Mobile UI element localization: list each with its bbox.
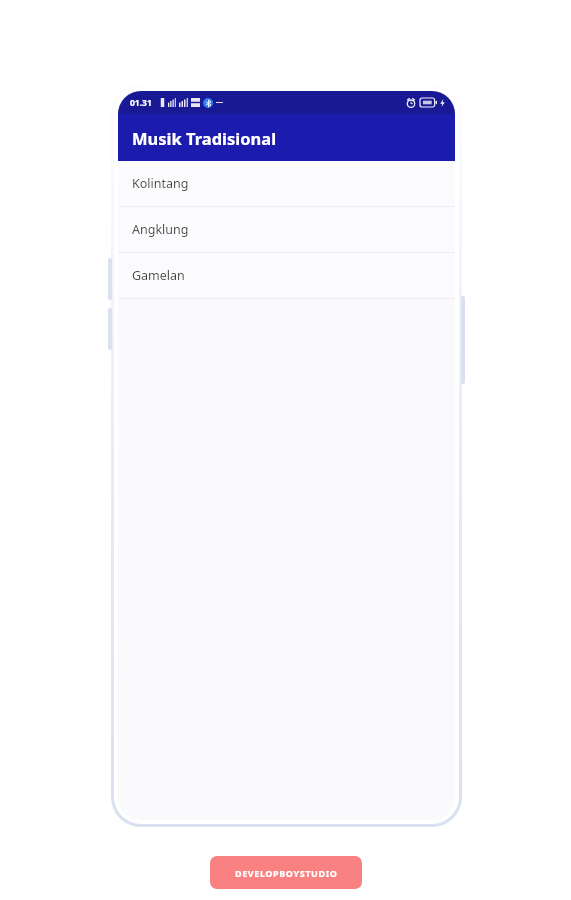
staticText: Angklung <box>132 221 189 238</box>
button[interactable]: Kolintang <box>118 161 455 206</box>
button[interactable]: DEVELOPBOYSTUDIO <box>210 856 362 889</box>
staticText: Musik Tradisional <box>132 127 277 149</box>
button[interactable]: Gamelan <box>118 253 455 298</box>
staticText: Gamelan <box>132 267 185 284</box>
staticText: 01.31 <box>130 97 152 109</box>
staticText: Kolintang <box>132 175 189 192</box>
staticText: DEVELOPBOYSTUDIO <box>235 867 338 879</box>
button[interactable]: Angklung <box>118 207 455 252</box>
